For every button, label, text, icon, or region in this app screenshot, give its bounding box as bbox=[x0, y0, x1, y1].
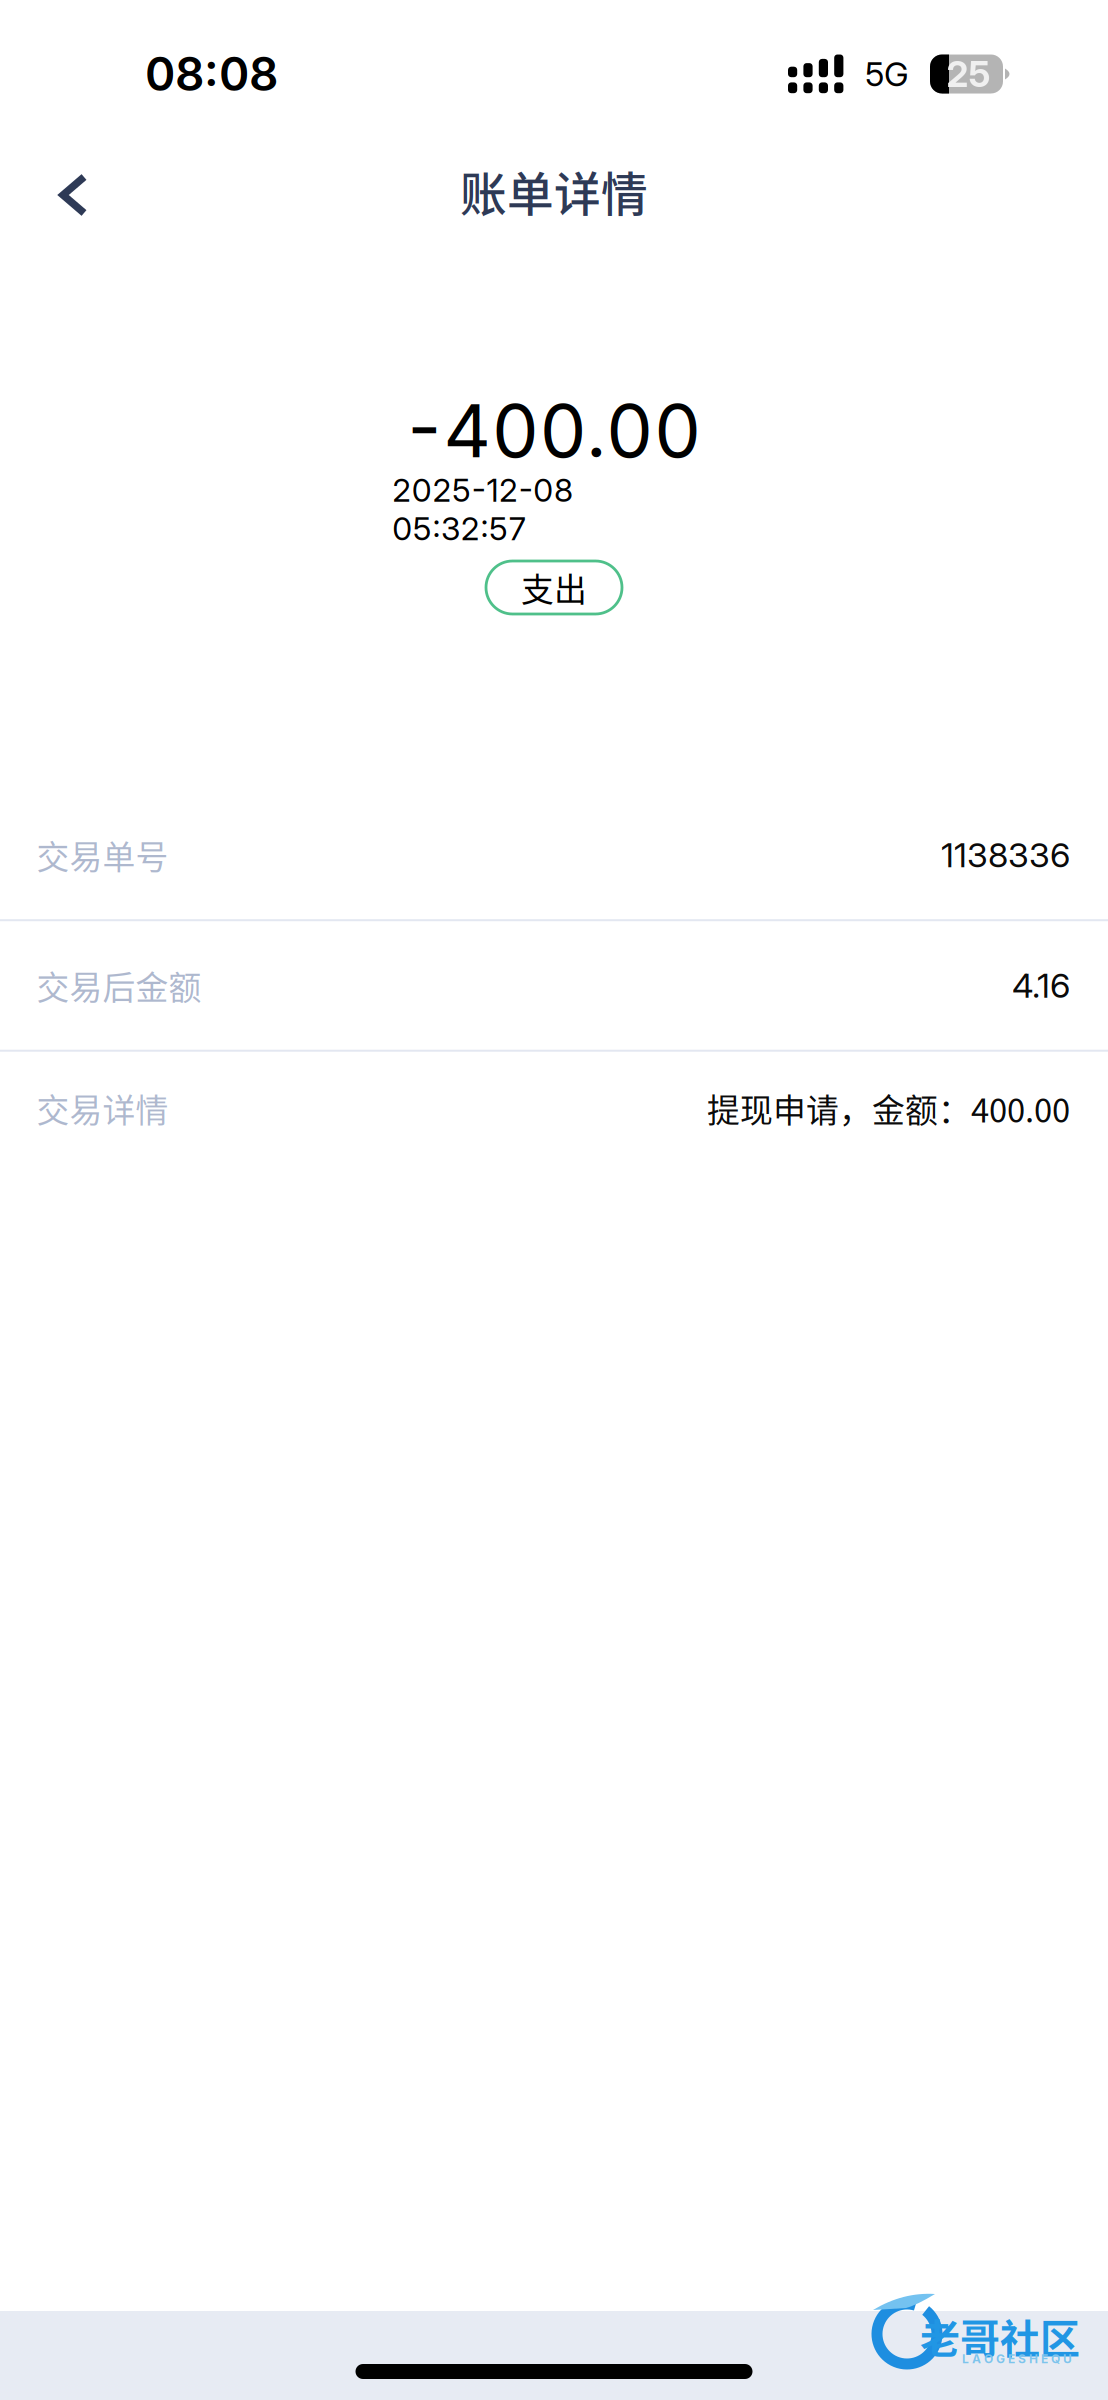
staticText: 交易详情 bbox=[36, 1084, 168, 1132]
staticText: 老哥社区 bbox=[920, 2307, 1080, 2365]
button[interactable]: 支出 bbox=[486, 561, 622, 614]
staticText: -400.00 bbox=[408, 386, 700, 475]
staticText: 5G bbox=[865, 54, 909, 94]
staticText: 08:08 bbox=[145, 46, 278, 102]
staticText: 4.16 bbox=[1012, 965, 1070, 1006]
staticText: 交易单号 bbox=[36, 831, 168, 879]
button[interactable]: Back bbox=[0, 111, 147, 271]
staticText: 账单详情 bbox=[460, 157, 648, 225]
staticText: L A O G E S H E Q U bbox=[962, 2352, 1072, 2366]
staticText: 2025-12-08 05:32:57 bbox=[392, 471, 716, 509]
staticText: 1138336 bbox=[941, 834, 1070, 876]
staticText: 25 bbox=[946, 52, 990, 96]
staticText: 支出 bbox=[521, 564, 587, 611]
staticText: 提现申请，金额：400.00 bbox=[707, 1084, 1070, 1132]
staticText: 交易后金额 bbox=[36, 962, 201, 1009]
